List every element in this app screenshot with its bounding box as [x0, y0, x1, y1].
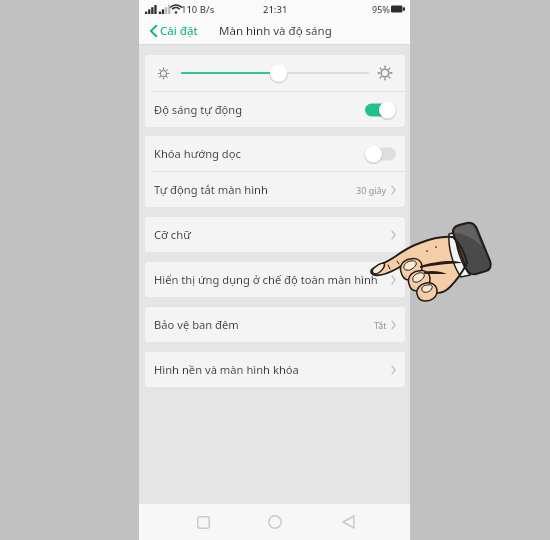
button[interactable]: Cài đặt [139, 20, 204, 42]
staticText: Cỡ chữ [154, 227, 191, 242]
button[interactable]: Cỡ chữ [145, 217, 405, 252]
staticText: 110 B/s [181, 3, 215, 16]
button[interactable]: Tự động tắt màn hình [145, 172, 405, 207]
staticText: Độ sáng tự động [154, 102, 243, 117]
staticText: Khóa hướng dọc [154, 146, 241, 161]
staticText: Hình nền và màn hình khóa [154, 362, 299, 377]
staticText: 21:31 [263, 3, 288, 16]
button[interactable]: Bảo vệ ban đêm [145, 307, 405, 342]
staticText: Hiển thị ứng dụng ở chế độ toàn màn hình [154, 272, 378, 287]
button[interactable]: Recent apps [185, 504, 221, 540]
button[interactable]: Hình nền và màn hình khóa [145, 352, 405, 387]
staticText: Màn hình và độ sáng [219, 23, 332, 39]
staticText: 30 giây [356, 184, 387, 196]
button[interactable]: Khóa hướng dọc [145, 136, 405, 171]
button[interactable]: Hiển thị ứng dụng ở chế độ toàn màn hình [145, 262, 405, 297]
staticText: Tắt [374, 319, 387, 331]
button[interactable]: Home [257, 504, 293, 540]
staticText: Tự động tắt màn hình [154, 182, 268, 197]
button[interactable]: Back [330, 504, 366, 540]
staticText: Cài đặt [160, 23, 198, 39]
staticText: Bảo vệ ban đêm [154, 317, 239, 332]
button[interactable]: Độ sáng tự động [145, 92, 405, 127]
staticText: 95% [372, 3, 390, 15]
